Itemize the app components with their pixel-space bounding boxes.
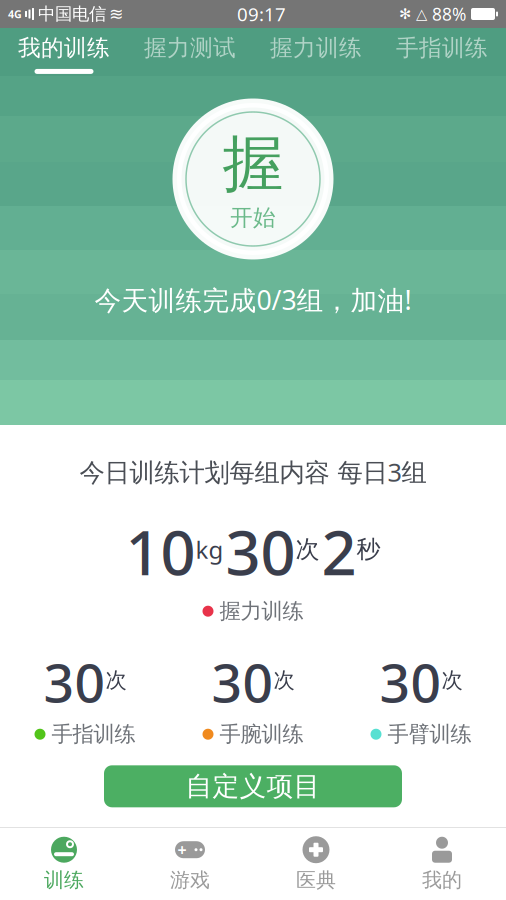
staticText: ✻	[399, 6, 411, 22]
staticText: 4G	[8, 7, 22, 21]
staticText: 09:17	[237, 2, 286, 26]
staticText: 中国电信	[38, 3, 106, 25]
button[interactable]: +	[127, 828, 253, 900]
staticText: 握力训练	[270, 34, 362, 62]
staticText: 10	[125, 511, 195, 592]
staticText: 医典	[296, 868, 336, 892]
button[interactable]: 开始握力训练	[172, 98, 334, 260]
button[interactable]: 自定义项目	[104, 765, 402, 807]
staticText: 手腕训练	[219, 721, 303, 747]
staticText: 手臂训练	[387, 721, 471, 747]
staticText: ≋	[109, 4, 124, 24]
button[interactable]: 握力训练	[253, 28, 379, 80]
staticText: 次	[273, 667, 294, 693]
button[interactable]: 手指训练	[379, 28, 505, 80]
staticText: 30	[379, 646, 441, 717]
staticText: 自定义项目	[185, 770, 320, 803]
staticText: 次	[105, 667, 126, 693]
staticText: △	[416, 6, 427, 22]
staticText: 88%	[432, 2, 466, 25]
staticText: 30	[211, 646, 273, 717]
staticText: 今日训练计划每组内容 每日3组	[79, 455, 426, 489]
staticText: 今天训练完成0/3组，加油!	[94, 282, 411, 317]
button[interactable]: 医典	[253, 828, 379, 900]
staticText: 我的	[422, 868, 462, 892]
staticText: 训练	[44, 868, 84, 892]
staticText: 手指训练	[396, 34, 488, 62]
staticText: 开始	[230, 204, 276, 231]
staticText: 次	[295, 535, 319, 564]
staticText: 30	[225, 511, 295, 592]
staticText: +	[177, 839, 186, 860]
staticText: 握力训练	[219, 598, 303, 624]
staticText: 手指训练	[51, 721, 135, 747]
staticText: 30	[43, 646, 105, 717]
button[interactable]: 我的训练	[1, 28, 127, 80]
staticText: 握	[222, 126, 283, 202]
button[interactable]: 我的	[379, 828, 505, 900]
staticText: 握力测试	[144, 34, 236, 62]
staticText: 2	[321, 511, 356, 592]
staticText: 游戏	[170, 868, 210, 892]
staticText: kg	[195, 533, 223, 565]
staticText: 秒	[356, 535, 380, 564]
button[interactable]: 握力测试	[127, 28, 253, 80]
staticText: 我的训练	[18, 34, 110, 62]
staticText: 次	[441, 667, 462, 693]
button[interactable]: 训练	[1, 828, 127, 900]
